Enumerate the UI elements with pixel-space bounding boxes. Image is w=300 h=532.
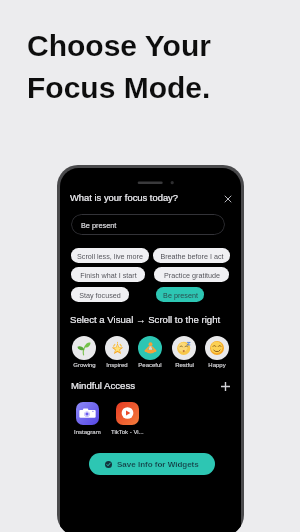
staticText: Finish what I start	[80, 271, 137, 279]
staticText: Practice gratitude	[164, 271, 220, 279]
staticText: Inspired	[106, 362, 128, 369]
staticText: Be present	[163, 291, 198, 299]
button[interactable]: Save Info for Widgets	[89, 453, 215, 475]
button[interactable]: Add app	[219, 380, 231, 392]
staticText: Select a Visual → Scroll to the right	[70, 314, 221, 325]
staticText: Restful	[175, 362, 194, 369]
button[interactable]: Close	[221, 192, 234, 205]
button[interactable]: Scroll less, live more	[71, 248, 149, 263]
button[interactable]: Instagram	[70, 402, 105, 436]
staticText: Mindful Access	[71, 380, 135, 391]
button[interactable]: Peaceful	[138, 336, 162, 369]
button[interactable]: Be present	[156, 287, 204, 302]
staticText: Scroll less, live more	[77, 252, 143, 260]
button[interactable]: Restful	[172, 336, 196, 369]
staticText: Breathe before I act	[160, 252, 224, 260]
staticText: Focus Mode.	[27, 71, 211, 105]
staticText: Growing	[73, 362, 96, 369]
button[interactable]: TikTok - Vi...	[110, 402, 145, 436]
staticText: Be present	[81, 221, 117, 229]
staticText: TikTok - Vi...	[111, 429, 144, 436]
button[interactable]: Be present	[71, 214, 225, 235]
button[interactable]: Happy	[205, 336, 229, 369]
staticText: Instagram	[74, 429, 101, 436]
staticText: Stay focused	[79, 291, 121, 299]
button[interactable]: Breathe before I act	[153, 248, 230, 263]
staticText: Choose Your	[27, 29, 211, 63]
staticText: Happy	[208, 362, 226, 369]
staticText: Peaceful	[138, 362, 162, 369]
staticText: Save Info for Widgets	[117, 460, 199, 469]
button[interactable]: Practice gratitude	[154, 267, 229, 282]
button[interactable]: Finish what I start	[71, 267, 145, 282]
button[interactable]: Inspired	[105, 336, 129, 369]
button[interactable]: Growing	[72, 336, 96, 369]
staticText: What is your focus today?	[70, 192, 179, 203]
button[interactable]: Stay focused	[71, 287, 129, 302]
